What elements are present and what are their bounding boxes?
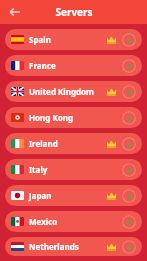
other: Premium (107, 191, 116, 200)
button[interactable]: Signal strength (122, 33, 136, 47)
staticText: Hong Kong (29, 112, 107, 123)
staticText: Ireland (29, 138, 107, 149)
button[interactable]: Signal strength (122, 137, 136, 151)
button[interactable]: Signal strength (122, 59, 136, 73)
button[interactable]: Hong Kong (5, 107, 142, 128)
other: Premium (107, 87, 116, 96)
button[interactable]: Japan (5, 185, 142, 206)
button[interactable]: Signal strength (122, 111, 136, 125)
staticText: Spain (29, 34, 107, 45)
button[interactable]: Back (5, 2, 25, 22)
other: Premium (107, 242, 116, 251)
button[interactable]: France (5, 55, 142, 76)
staticText: Japan (29, 190, 107, 201)
button[interactable]: Italy (5, 159, 142, 180)
staticText: France (29, 60, 107, 71)
staticText: Italy (29, 164, 107, 175)
other: Premium (107, 35, 116, 44)
staticText: Mexico (29, 216, 107, 227)
button[interactable]: Signal strength (122, 85, 136, 99)
other: Premium (107, 139, 116, 148)
button[interactable]: Ireland (5, 133, 142, 154)
button[interactable]: Mexico (5, 211, 142, 232)
button[interactable]: United Kingdom (5, 81, 142, 102)
button[interactable]: Signal strength (122, 215, 136, 229)
staticText: Netherlands (29, 241, 107, 252)
button[interactable]: Signal strength (122, 163, 136, 177)
staticText: Servers (55, 5, 93, 19)
button[interactable]: Spain (5, 29, 142, 50)
button[interactable]: Signal strength (122, 189, 136, 203)
button[interactable]: Signal strength (122, 240, 136, 254)
button[interactable]: Netherlands (5, 237, 142, 256)
staticText: United Kingdom (29, 86, 107, 97)
